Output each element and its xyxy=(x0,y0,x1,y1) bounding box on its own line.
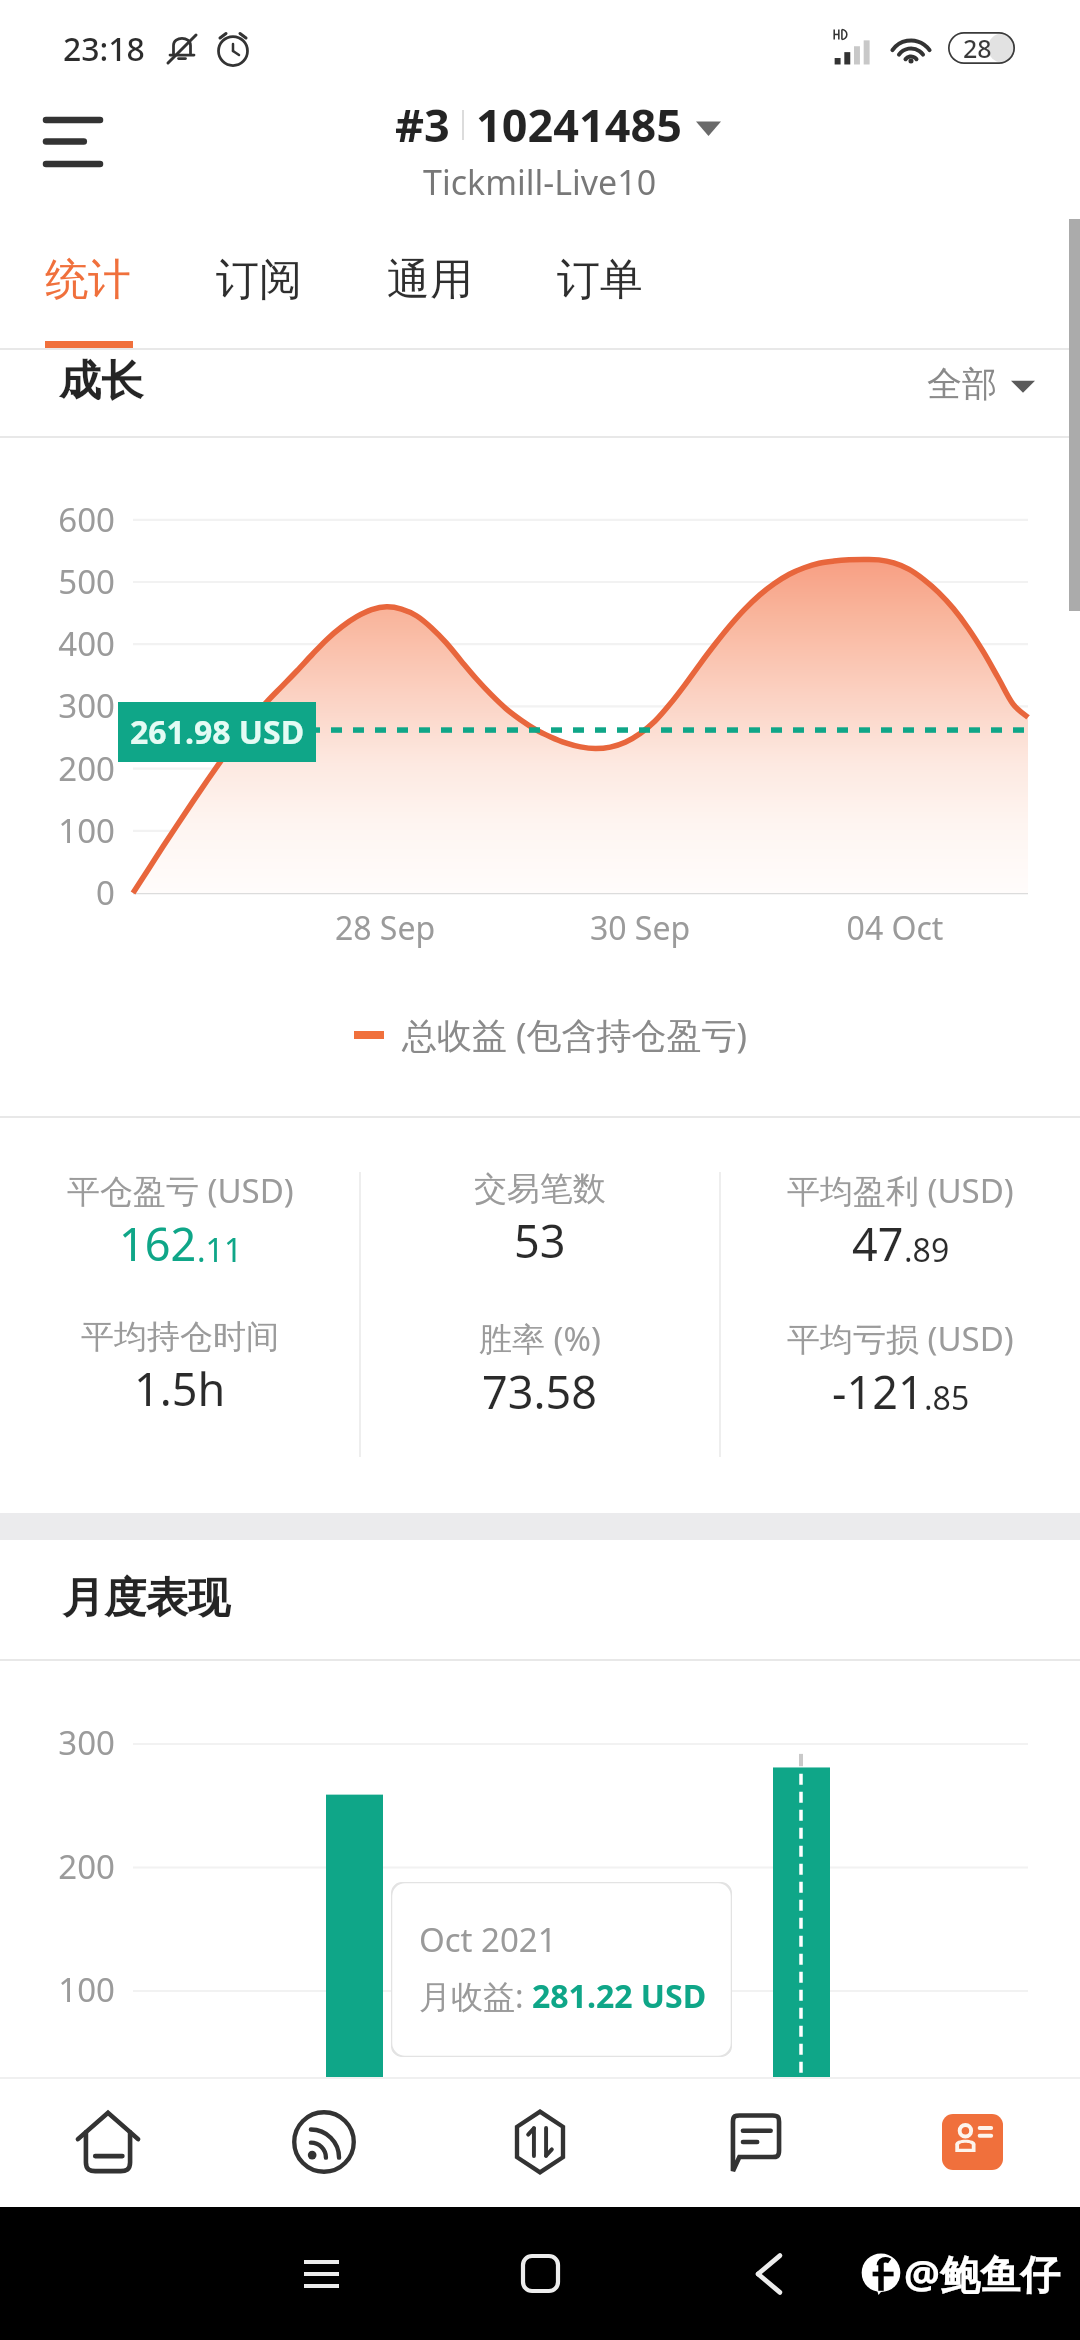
staticText: 平均盈利 (USD) xyxy=(787,1168,1014,1213)
staticText: .89 xyxy=(904,1228,950,1272)
button[interactable]: 全部 xyxy=(927,362,1035,406)
staticText: 162 xyxy=(119,1213,197,1274)
staticText: 平均持仓时间 xyxy=(81,1316,279,1358)
staticText: 100 xyxy=(0,808,115,853)
staticText: 月度表现 xyxy=(62,1572,230,1625)
staticText: 28 xyxy=(963,32,992,63)
staticText: 23:18 xyxy=(63,27,145,71)
staticText: 平均亏损 (USD) xyxy=(787,1316,1014,1361)
button[interactable]: 统计 xyxy=(23,224,153,348)
button[interactable]: 通用 xyxy=(365,224,495,348)
button[interactable]: Menu xyxy=(14,92,130,208)
staticText: 订单 xyxy=(557,253,643,307)
button[interactable]: 订阅 xyxy=(194,224,324,348)
staticText: 胜率 (%) xyxy=(479,1316,601,1361)
staticText: Oct 2021 xyxy=(419,1917,557,1962)
staticText: 53 xyxy=(514,1210,566,1271)
staticText: 73.58 xyxy=(482,1361,598,1422)
button[interactable]: Back xyxy=(729,2207,809,2340)
button[interactable]: Signals xyxy=(216,2077,432,2207)
button[interactable]: Home xyxy=(500,2207,580,2340)
button[interactable]: Recents xyxy=(281,2207,361,2340)
staticText: 订阅 xyxy=(216,253,302,307)
staticText: 平仓盈亏 (USD) xyxy=(67,1168,294,1213)
staticText: 月收益: xyxy=(419,1974,532,2018)
staticText: 成长 xyxy=(59,355,143,408)
button[interactable]: 订单 xyxy=(535,224,665,348)
staticText: 1.5h xyxy=(134,1358,226,1419)
staticText: #3 xyxy=(395,94,450,155)
staticText: .11 xyxy=(197,1228,243,1272)
button[interactable]: Chat xyxy=(648,2077,864,2207)
button[interactable]: Trade xyxy=(432,2077,648,2207)
staticText: 0 xyxy=(0,870,115,915)
staticText: @鲍鱼仔 xyxy=(904,2246,1060,2301)
staticText: 261.98 USD xyxy=(130,710,305,754)
staticText: 04 Oct xyxy=(795,906,995,950)
staticText: 通用 xyxy=(387,253,473,307)
staticText: 200 xyxy=(0,746,115,791)
staticText: 200 xyxy=(0,1844,115,1889)
staticText: 总收益 (包含持仓盈亏) xyxy=(402,1011,748,1059)
staticText: 统计 xyxy=(45,253,131,307)
staticText: 300 xyxy=(0,1720,115,1765)
staticText: 交易笔数 xyxy=(474,1168,606,1210)
staticText: 600 xyxy=(0,497,115,542)
staticText: 10241485 xyxy=(476,94,682,155)
staticText: 300 xyxy=(0,683,115,728)
staticText: Tickmill-Live10 xyxy=(423,159,657,205)
staticText: -121 xyxy=(832,1361,924,1422)
staticText: 全部 xyxy=(927,362,997,406)
staticText: 28 Sep xyxy=(285,906,485,950)
button[interactable]: Home xyxy=(0,2077,216,2207)
button[interactable]: Accounts xyxy=(864,2077,1080,2207)
staticText: 400 xyxy=(0,621,115,666)
staticText: 281.22 USD xyxy=(532,1974,707,2018)
staticText: 47 xyxy=(852,1213,904,1274)
staticText: .85 xyxy=(924,1376,970,1420)
staticText: 30 Sep xyxy=(540,906,740,950)
staticText: 100 xyxy=(0,1967,115,2012)
staticText: 500 xyxy=(0,559,115,604)
